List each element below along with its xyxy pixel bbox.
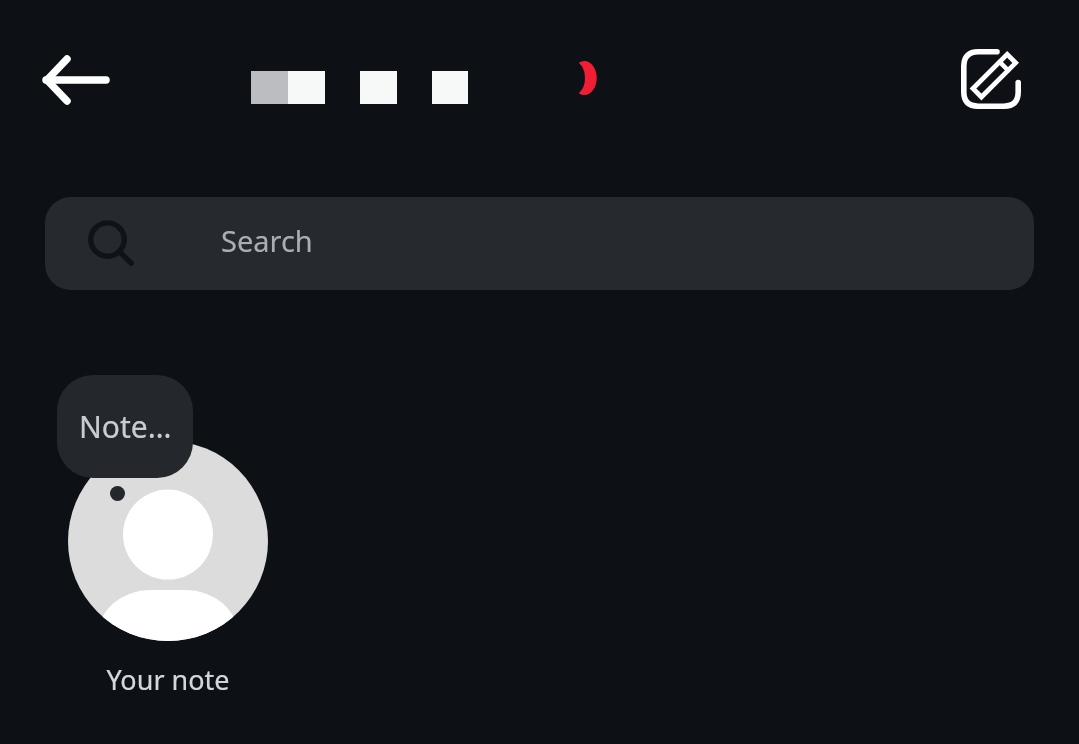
staticText: Note… [79,406,172,447]
button[interactable]: New post [951,39,1031,119]
button[interactable]: Search [45,197,1034,290]
staticText: Search [221,221,313,260]
staticText: Your note [44,661,292,701]
button[interactable]: Back [26,46,126,114]
button[interactable]: Note… [44,360,292,710]
